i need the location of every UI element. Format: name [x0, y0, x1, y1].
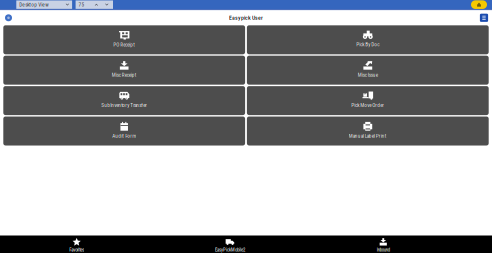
staticText: Inbound — [377, 247, 390, 253]
button[interactable]: Misc Issue — [247, 56, 489, 85]
staticText: Desktop View — [19, 1, 48, 8]
button[interactable]: SubInventory Transfer — [3, 86, 245, 115]
button[interactable]: Zoom out — [104, 4, 110, 6]
button[interactable]: Manual Label Print — [247, 116, 489, 145]
staticText: 75 — [79, 1, 85, 8]
staticText: SubInventory Transfer — [101, 102, 147, 108]
staticText: Audit Form — [112, 133, 136, 139]
button[interactable]: Audit Form — [3, 116, 245, 145]
button[interactable]: Misc Receipt — [3, 56, 245, 85]
button[interactable]: Favorites — [0, 235, 153, 253]
button[interactable]: Menu — [479, 13, 489, 23]
button[interactable]: Inbound — [307, 235, 460, 253]
staticText: PO Receipt — [113, 42, 135, 48]
staticText: Pick Move Order — [351, 102, 384, 108]
button[interactable]: PO Receipt — [3, 25, 245, 54]
staticText: Favorites — [69, 247, 84, 253]
staticText: Pick By Doc — [356, 41, 379, 47]
button[interactable]: Account — [4, 13, 13, 22]
staticText: Misc Receipt — [112, 72, 137, 78]
button[interactable]: Zoom in — [93, 4, 100, 6]
button[interactable]: Pick Move Order — [247, 86, 489, 115]
staticText: Misc Issue — [358, 72, 378, 78]
button[interactable]: EasyPickMobile2 — [153, 235, 307, 253]
staticText: Manual Label Print — [349, 133, 387, 139]
button[interactable]: Extensions — [471, 0, 487, 9]
button[interactable]: Desktop View — [16, 0, 72, 9]
button[interactable]: Pick By Doc — [247, 25, 489, 54]
staticText: EasyPickMobile2 — [215, 247, 245, 253]
staticText: Easypick User — [229, 14, 263, 21]
